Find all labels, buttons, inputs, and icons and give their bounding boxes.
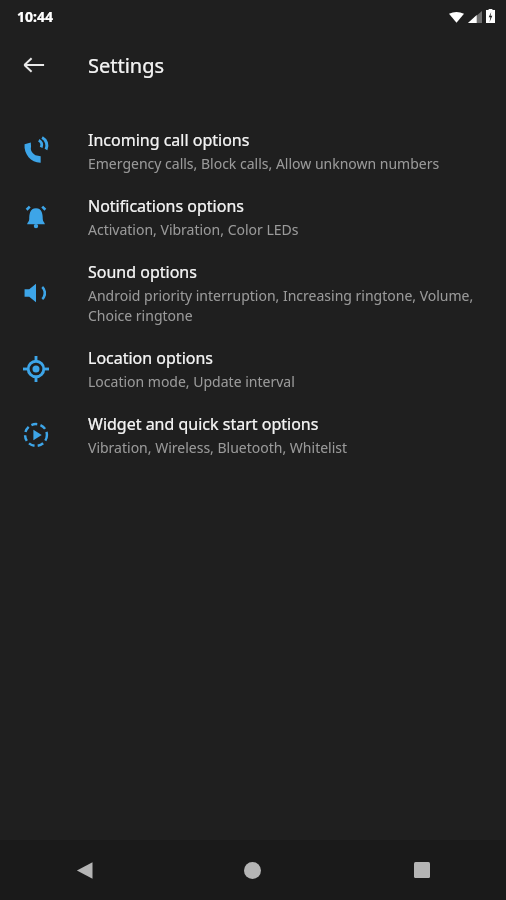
button[interactable]: Home	[168, 840, 337, 900]
button[interactable]: Location options	[0, 336, 506, 402]
staticText: Location options	[88, 347, 214, 369]
staticText: Android priority interruption, Increasin…	[88, 286, 482, 325]
button[interactable]: Notifications options	[0, 184, 506, 250]
staticText: Emergency calls, Block calls, Allow unkn…	[88, 154, 440, 173]
staticText: Activation, Vibration, Color LEDs	[88, 220, 299, 239]
staticText: Location mode, Update interval	[88, 372, 295, 391]
staticText: 10:44	[17, 7, 53, 26]
staticText: Vibration, Wireless, Bluetooth, Whitelis…	[88, 438, 348, 457]
button[interactable]: Recent apps	[337, 840, 506, 900]
staticText: Widget and quick start options	[88, 413, 319, 435]
staticText: Sound options	[88, 261, 197, 283]
button[interactable]: Widget and quick start options	[0, 402, 506, 468]
staticText: Incoming call options	[88, 129, 250, 151]
staticText: Notifications options	[88, 195, 244, 217]
button[interactable]: Back	[0, 840, 168, 900]
button[interactable]: Sound options	[0, 250, 506, 336]
staticText: Settings	[88, 52, 165, 79]
button[interactable]: Incoming call options	[0, 118, 506, 184]
button[interactable]: Back	[10, 41, 58, 89]
